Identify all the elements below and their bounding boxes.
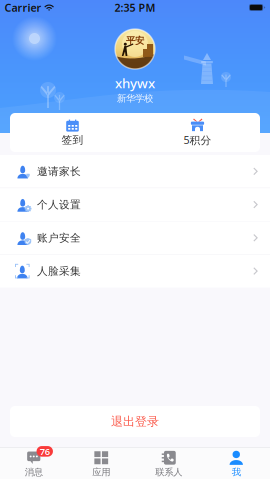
staticText: 联系人	[155, 466, 182, 478]
staticText: 新华学校	[117, 93, 153, 104]
staticText: 2:35 PM	[114, 0, 155, 15]
staticText: 应用	[92, 466, 110, 478]
staticText: 个人设置	[37, 198, 81, 211]
staticText: 76	[40, 445, 50, 458]
button[interactable]: 人脸采集	[0, 255, 270, 288]
button[interactable]: 签到	[10, 113, 135, 152]
button[interactable]: 5积分	[135, 113, 260, 152]
button[interactable]: 我	[202, 447, 270, 479]
staticText: xhywx	[115, 74, 155, 92]
button[interactable]: 邀请家长	[0, 155, 270, 188]
button[interactable]: 联系人	[135, 447, 202, 479]
staticText: 5积分	[183, 133, 211, 147]
staticText: 我	[232, 466, 241, 478]
staticText: 邀请家长	[37, 165, 81, 178]
staticText: 账户安全	[37, 231, 81, 244]
staticText: 平安	[126, 35, 144, 46]
button[interactable]: 个人设置	[0, 188, 270, 221]
button[interactable]: 76	[0, 447, 67, 479]
button[interactable]: 应用	[67, 447, 135, 479]
staticText: 签到	[61, 133, 83, 146]
button[interactable]: 退出登录	[10, 406, 260, 437]
staticText: 消息	[25, 466, 43, 478]
button[interactable]: 账户安全	[0, 221, 270, 254]
staticText: 人脸采集	[37, 265, 81, 278]
staticText: 退出登录	[111, 414, 159, 429]
staticText: Carrier	[4, 0, 41, 15]
